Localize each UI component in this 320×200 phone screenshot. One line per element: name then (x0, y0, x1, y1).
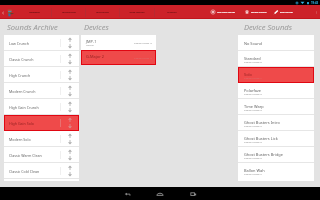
button[interactable]: High Crunch (4, 67, 79, 83)
staticText: TC (86, 59, 89, 62)
staticText: Classic Warm Clean (9, 153, 42, 158)
button[interactable]: Reorder (61, 67, 79, 83)
staticText: Marshall (86, 44, 94, 47)
button[interactable]: Reorder (61, 35, 79, 51)
button[interactable]: Ghost Busters Intro (238, 115, 314, 131)
staticText: High Gain Solo (9, 121, 34, 126)
button[interactable]: No Sound (238, 35, 314, 51)
staticText: Standard (244, 56, 261, 61)
staticText: EDIT SOUND (280, 11, 293, 14)
staticText: PREFERENCES (29, 11, 40, 13)
button[interactable]: EDIT SOUND (273, 5, 293, 19)
button[interactable]: Standard (238, 51, 314, 67)
button[interactable]: SOUND COMPOSER (120, 5, 154, 19)
button[interactable]: Home (153, 187, 167, 200)
staticText: SOUND COMPOSER (129, 11, 145, 13)
button[interactable]: DB SOUNDS (155, 5, 188, 19)
staticText: Device Sounds (244, 22, 292, 32)
staticText: Program Change 07 (244, 173, 262, 176)
staticText: Program Change 16 (134, 57, 152, 60)
staticText: Program Change 16 (134, 42, 152, 45)
staticText: Program Change 01 (244, 77, 262, 80)
staticText: High Crunch (9, 73, 31, 78)
staticText: Program Change 00 (244, 61, 262, 64)
button[interactable]: Up (0, 5, 14, 19)
button[interactable]: More options (312, 5, 320, 19)
staticText: DEVICE SOUNDS (96, 11, 109, 13)
button[interactable]: JMP-1 (81, 35, 156, 50)
button[interactable]: G-Major 2 (81, 50, 156, 65)
button[interactable]: DEVICE SOUNDS (86, 5, 119, 19)
staticText: Program Change 04 (244, 125, 262, 128)
button[interactable]: Ballon Wah (238, 163, 314, 179)
staticText: Time Warp (244, 104, 264, 109)
staticText: Ghost Busters Lick (244, 136, 278, 141)
button[interactable]: Low Crunch (4, 35, 79, 51)
staticText: Modern Crunch (9, 89, 36, 94)
button[interactable]: PREFERENCES (18, 5, 51, 19)
staticText: Program Change 06 (244, 157, 262, 160)
button[interactable]: Solo (238, 67, 314, 83)
button[interactable]: Back (120, 187, 134, 200)
button[interactable]: Reorder (61, 99, 79, 115)
button[interactable]: Ghost Busters Lick (238, 131, 314, 147)
button[interactable]: Reorder (61, 115, 79, 131)
button[interactable]: Recent apps (186, 187, 200, 200)
staticText: DELETE SOUND (251, 11, 267, 14)
staticText: Classic Cold Clean (9, 169, 40, 174)
button[interactable]: Classic Warm Clean (4, 147, 79, 163)
button[interactable]: Time Warp (238, 99, 314, 115)
button[interactable]: Classic Crunch (4, 51, 79, 67)
button[interactable]: Reorder (61, 147, 79, 163)
staticText: Program Change 02 (244, 93, 262, 96)
staticText: JMP-1 (86, 39, 97, 44)
staticText: DEVICE SETTINGS (62, 11, 76, 13)
staticText: Ghost Busters Bridge (244, 152, 283, 157)
staticText: Classic Crunch (9, 57, 34, 62)
button[interactable]: ADD NEW SOUND (210, 5, 236, 19)
staticText: Sounds Archive (7, 22, 58, 32)
button[interactable]: DEVICE SETTINGS (52, 5, 85, 19)
button[interactable]: Ghost Busters Bridge (238, 147, 314, 163)
button[interactable]: Classic Cold Clean (4, 163, 79, 179)
staticText: Ghost Busters Intro (244, 120, 280, 125)
staticText: 19:43 (311, 1, 319, 5)
button[interactable]: Reorder (61, 163, 79, 179)
button[interactable]: Reorder (61, 83, 79, 99)
staticText: Solo (244, 72, 252, 77)
button[interactable]: Reorder (61, 131, 79, 147)
button[interactable]: DELETE SOUND (244, 5, 267, 19)
button[interactable]: High Gain Crunch (4, 99, 79, 115)
staticText: Devices (84, 22, 109, 32)
button[interactable]: High Gain Solo (4, 115, 79, 131)
staticText: High Gain Crunch (9, 105, 39, 110)
staticText: DB SOUNDS (167, 11, 177, 13)
button[interactable]: Reorder (61, 51, 79, 67)
staticText: Ballon Wah (244, 168, 265, 173)
staticText: ADD NEW SOUND (217, 11, 236, 14)
staticText: No Sound (244, 41, 263, 46)
button[interactable]: Modern Crunch (4, 83, 79, 99)
staticText: Modern Solo (9, 137, 31, 142)
staticText: Low Crunch (9, 41, 29, 46)
staticText: Program Change 05 (244, 141, 262, 144)
button[interactable]: Polarfaze (238, 83, 314, 99)
staticText: Polarfaze (244, 88, 262, 93)
staticText: Program Change 03 (244, 109, 262, 112)
button[interactable]: Modern Solo (4, 131, 79, 147)
staticText: G-Major 2 (86, 54, 104, 59)
